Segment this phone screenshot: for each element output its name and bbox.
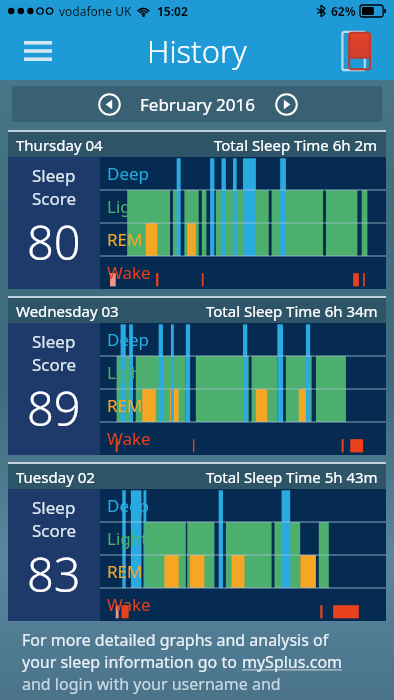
staticText: REM	[107, 560, 143, 583]
staticText: Wake	[107, 593, 151, 616]
staticText: Total Sleep Time 5h 43m	[206, 467, 378, 487]
staticText: For more detailed graphs and analysis of	[22, 629, 329, 651]
button[interactable]: Tuesday 02	[8, 462, 386, 621]
staticText: 62%	[331, 3, 356, 19]
staticText: Sleep	[32, 496, 76, 519]
button[interactable]: Menu	[16, 29, 60, 73]
staticText: History	[147, 30, 247, 72]
staticText: Total Sleep Time 6h 34m	[206, 301, 378, 321]
staticText: Deep	[107, 162, 150, 185]
staticText: Score	[32, 519, 77, 542]
staticText: Light	[107, 527, 148, 550]
button[interactable]: Next month	[269, 87, 303, 121]
staticText: mySplus.com	[242, 651, 343, 673]
staticText: Tuesday 02	[16, 467, 95, 487]
staticText: your sleep information go to	[22, 651, 242, 673]
staticText: 80	[27, 210, 81, 274]
staticText: February 2016	[140, 93, 255, 116]
staticText: 15:02	[157, 3, 188, 19]
staticText: Sleep	[32, 164, 76, 187]
staticText: Sleep	[32, 330, 76, 353]
staticText: REM	[107, 228, 143, 251]
staticText: Light	[107, 195, 148, 218]
button[interactable]: Previous month	[92, 87, 126, 121]
button[interactable]: Sleep diary	[334, 27, 382, 75]
staticText: Wake	[107, 427, 151, 450]
button[interactable]: mySplus.com	[242, 651, 343, 673]
staticText: vodafone UK	[59, 3, 132, 19]
staticText: Score	[32, 353, 77, 376]
staticText: 89	[27, 376, 81, 440]
staticText: Wednesday 03	[16, 301, 119, 321]
button[interactable]: Wednesday 03	[8, 296, 386, 455]
staticText: Deep	[107, 494, 150, 517]
staticText: REM	[107, 394, 143, 417]
staticText: Score	[32, 187, 77, 210]
staticText: Total Sleep Time 6h 2m	[214, 135, 378, 155]
staticText: 83	[27, 542, 81, 606]
staticText: Light	[107, 361, 148, 384]
staticText: and login with your username and	[22, 673, 281, 695]
staticText: Wake	[107, 261, 151, 284]
staticText: Thursday 04	[16, 135, 103, 155]
button[interactable]: Thursday 04	[8, 130, 386, 289]
staticText: Deep	[107, 328, 150, 351]
